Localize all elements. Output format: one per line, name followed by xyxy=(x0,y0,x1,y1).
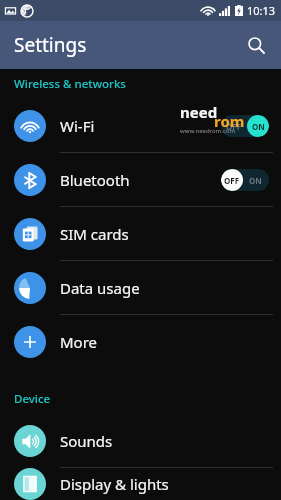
staticText: Wireless & networks xyxy=(14,76,126,92)
staticText: OFF xyxy=(224,175,240,186)
button[interactable]: Switch off xyxy=(221,169,269,191)
button[interactable]: SIM cards xyxy=(0,207,281,260)
staticText: More xyxy=(60,332,269,352)
button[interactable]: Sounds xyxy=(0,414,281,467)
staticText: 10:13 xyxy=(247,3,276,18)
staticText: SIM cards xyxy=(60,224,269,244)
button[interactable]: Wi-Fi xyxy=(0,99,281,152)
staticText: rom xyxy=(214,111,245,131)
button[interactable]: Data usage xyxy=(0,261,281,314)
staticText: ON xyxy=(249,175,262,186)
staticText: ON xyxy=(252,121,265,132)
staticText: Sounds xyxy=(60,431,269,451)
staticText: Data usage xyxy=(60,278,269,298)
staticText: need xyxy=(180,102,218,122)
button[interactable]: Bluetooth xyxy=(0,153,281,206)
button[interactable]: More xyxy=(0,315,281,368)
staticText: OFF xyxy=(226,121,242,132)
button[interactable]: Display & lights xyxy=(0,468,281,500)
button[interactable]: Search xyxy=(238,27,274,63)
staticText: Settings xyxy=(14,32,87,58)
staticText: Wi-Fi xyxy=(60,116,221,136)
staticText: www.needrom.com xyxy=(180,127,236,135)
button[interactable]: Switch on xyxy=(221,115,269,137)
staticText: Display & lights xyxy=(60,474,269,494)
staticText: Device xyxy=(14,391,51,407)
staticText: Bluetooth xyxy=(60,170,221,190)
